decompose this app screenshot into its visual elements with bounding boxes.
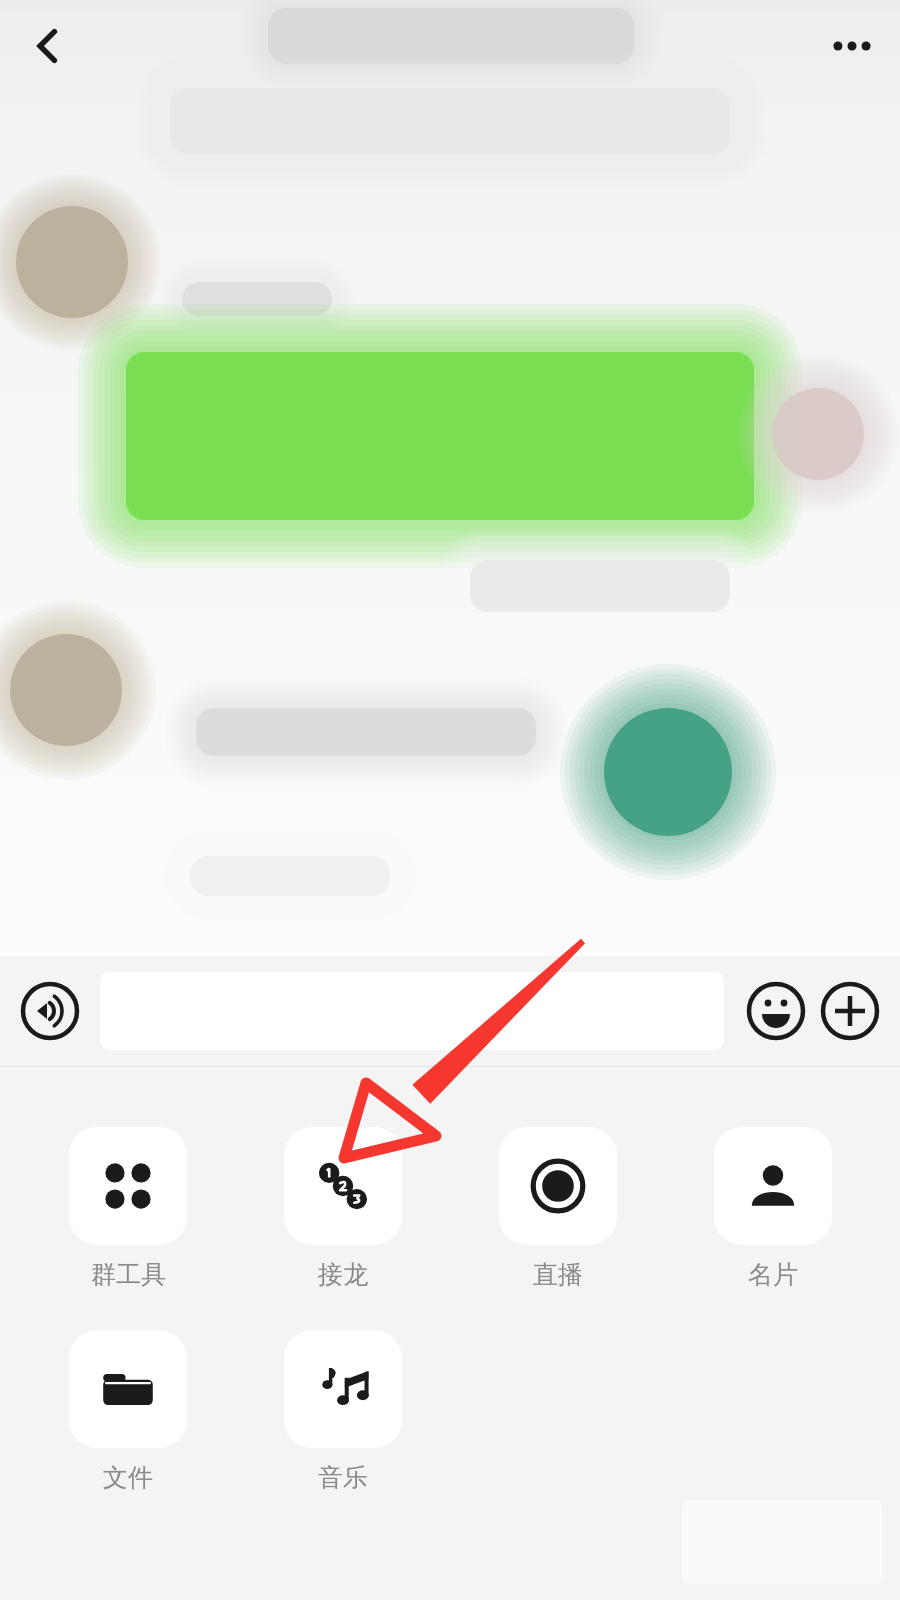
- other: Music: [284, 1330, 402, 1448]
- staticText: 群工具: [91, 1259, 166, 1290]
- button[interactable]: File: [69, 1330, 187, 1493]
- button[interactable]: Emoji: [744, 979, 808, 1043]
- button[interactable]: Back: [6, 4, 90, 88]
- button[interactable]: Group tools: [69, 1127, 187, 1290]
- staticText: 直播: [533, 1259, 583, 1290]
- staticText: 音乐: [318, 1462, 368, 1493]
- other: File: [69, 1330, 187, 1448]
- button[interactable]: Voice message: [18, 979, 82, 1043]
- button[interactable]: Live: [499, 1127, 617, 1290]
- button[interactable]: Contact card: [714, 1127, 832, 1290]
- staticText: 文件: [103, 1462, 153, 1493]
- button[interactable]: Music: [284, 1330, 402, 1493]
- button[interactable]: Solitaire / chain list: [284, 1127, 402, 1290]
- other: Group tools: [69, 1127, 187, 1245]
- other: Live: [499, 1127, 617, 1245]
- other: Solitaire / chain list: [284, 1127, 402, 1245]
- button[interactable]: More: [818, 979, 882, 1043]
- other: Contact card: [714, 1127, 832, 1245]
- button[interactable]: More options: [810, 4, 894, 88]
- button[interactable]: Message input: [100, 972, 724, 1050]
- staticText: 名片: [748, 1259, 798, 1290]
- staticText: 接龙: [318, 1259, 368, 1290]
